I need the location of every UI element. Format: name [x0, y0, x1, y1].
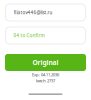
- staticText: Exp.: 04.11.2030: [32, 72, 59, 77]
- staticText: 04 to Confirm: [13, 32, 44, 39]
- button[interactable]: 04 to Confirm: [5, 27, 85, 44]
- button[interactable]: filatov446@list.ru: [5, 4, 85, 21]
- staticText: filatov446@list.ru: [13, 9, 52, 16]
- staticText: Original: [32, 58, 58, 67]
- button[interactable]: Original: [5, 54, 86, 71]
- staticText: batch: 2737: [36, 78, 55, 83]
